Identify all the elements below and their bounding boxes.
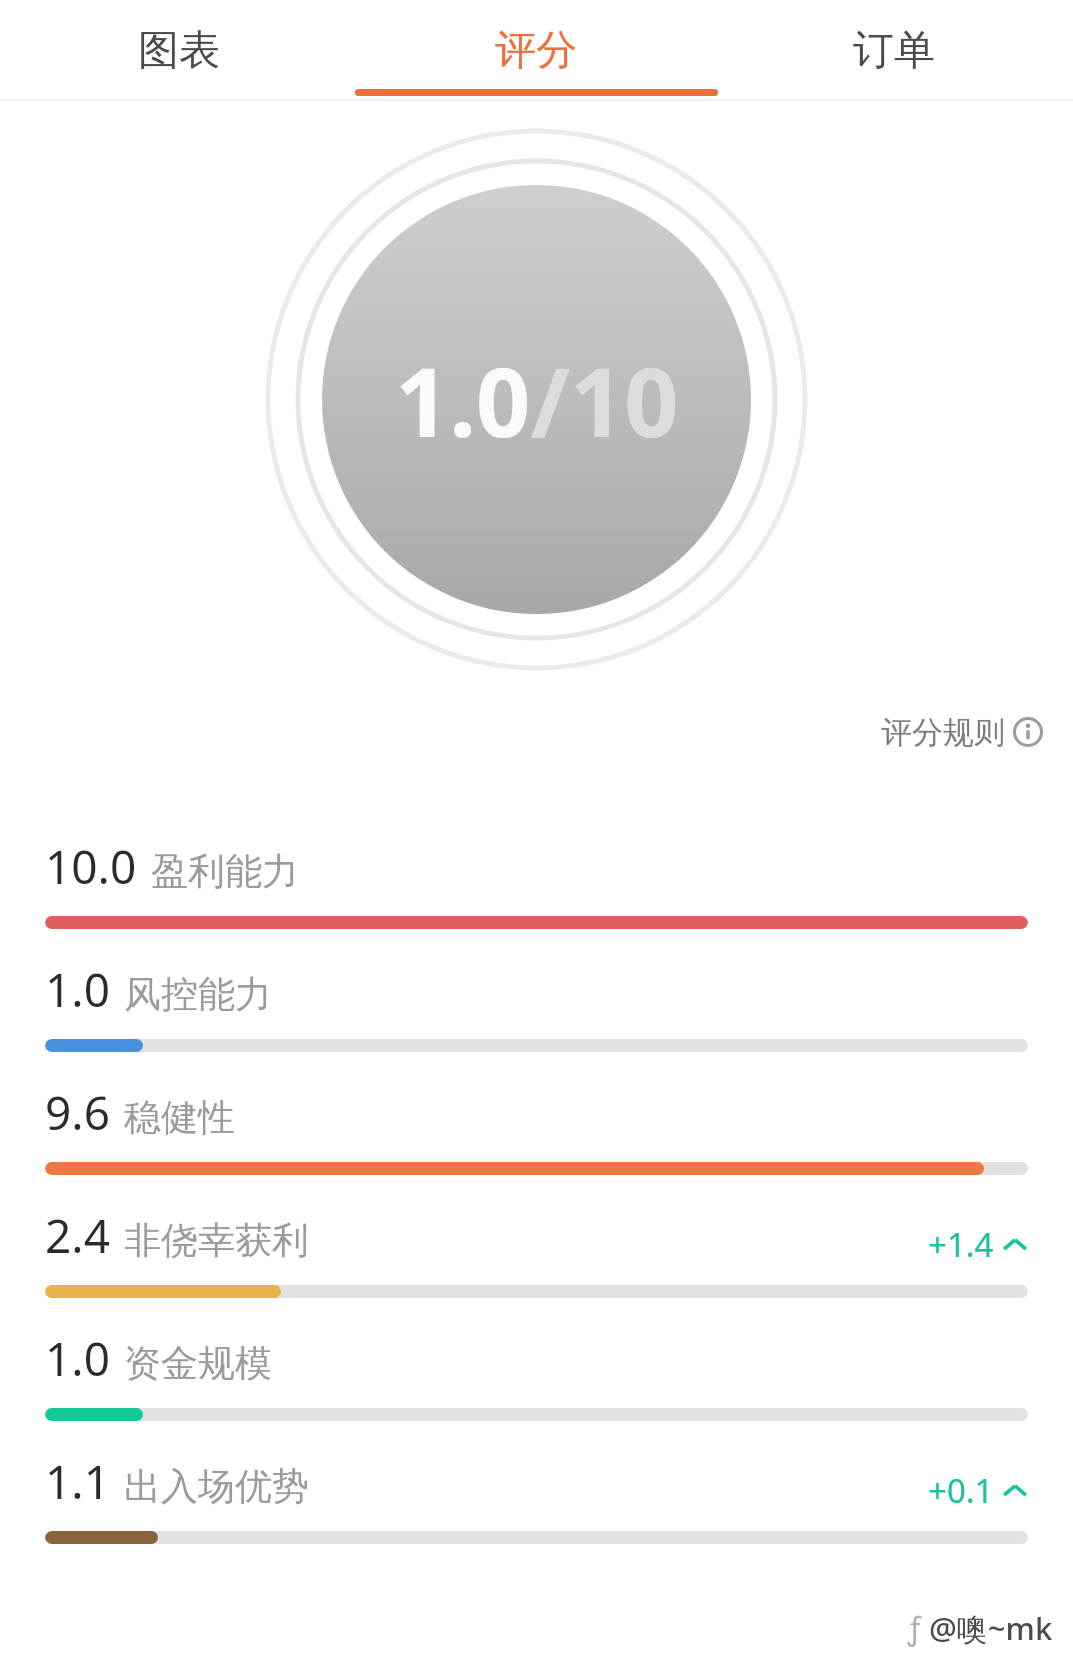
staticText: 非侥幸获利	[124, 1217, 309, 1264]
staticText: 评分规则	[881, 713, 1005, 752]
button[interactable]: 10.0	[0, 811, 1073, 934]
staticText: +1.4	[928, 1222, 994, 1267]
button[interactable]: 9.6	[0, 1057, 1073, 1180]
staticText: 1.0/10	[395, 335, 679, 464]
staticText: 盈利能力	[151, 848, 299, 895]
staticText: 1.0	[45, 958, 110, 1021]
staticText: 1.1	[45, 1450, 110, 1513]
staticText: 稳健性	[124, 1094, 235, 1141]
staticText: +0.1	[928, 1468, 994, 1513]
staticText: 资金规模	[124, 1340, 272, 1387]
staticText: 订单	[853, 25, 935, 77]
button[interactable]: 图表	[0, 0, 357, 101]
staticText: 图表	[138, 25, 220, 77]
staticText: 1.0	[45, 1327, 110, 1390]
button[interactable]: 评分规则	[881, 701, 1043, 763]
button[interactable]: 评分	[357, 0, 715, 101]
button[interactable]: 1.0	[0, 1303, 1073, 1426]
button[interactable]: 订单	[715, 0, 1073, 101]
staticText: 出入场优势	[124, 1463, 309, 1510]
button[interactable]: 2.4	[0, 1180, 1073, 1303]
staticText: 10.0	[45, 835, 137, 898]
staticText: 评分	[495, 25, 577, 77]
button[interactable]: 1.1	[0, 1426, 1073, 1549]
staticText: 9.6	[45, 1081, 110, 1144]
button[interactable]: 1.0	[0, 934, 1073, 1057]
staticText: @噢~mk	[929, 1607, 1053, 1649]
staticText: 2.4	[45, 1204, 110, 1267]
staticText: 风控能力	[124, 971, 272, 1018]
staticText: ƒ	[908, 1608, 921, 1649]
